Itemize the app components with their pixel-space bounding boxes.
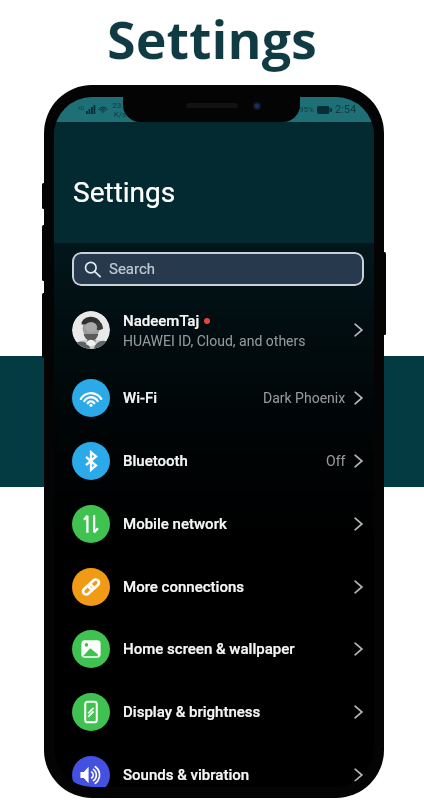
staticText: 4G <box>78 105 85 111</box>
button[interactable]: Display & brightness <box>54 681 374 742</box>
staticText: Wi-Fi <box>123 389 158 407</box>
staticText: 23.8 K/s <box>112 101 128 119</box>
staticText: Bluetooth <box>123 452 188 470</box>
button[interactable]: More connections <box>54 556 374 617</box>
staticText: Display & brightness <box>123 703 261 721</box>
staticText: 95% <box>299 105 314 114</box>
button[interactable]: Wi-Fi <box>54 367 374 428</box>
staticText: Mobile network <box>123 515 227 533</box>
staticText: HUAWEI ID, Cloud, and others <box>123 333 306 349</box>
staticText: Sounds & vibration <box>123 766 250 784</box>
staticText: Dark Phoenix <box>263 390 346 406</box>
staticText: Settings <box>0 3 424 74</box>
staticText: More connections <box>123 578 245 596</box>
button[interactable]: Home screen & wallpaper <box>54 618 374 679</box>
button[interactable]: Sounds & vibration <box>54 744 374 787</box>
button[interactable]: Search <box>72 252 364 286</box>
staticText: Search <box>109 260 156 278</box>
staticText: 2:54 <box>335 103 357 116</box>
staticText: NadeemTaj <box>123 312 200 330</box>
staticText: Settings <box>73 176 176 209</box>
staticText: Off <box>326 453 346 469</box>
staticText: Home screen & wallpaper <box>123 640 295 658</box>
button[interactable]: NadeemTaj <box>54 297 374 363</box>
button[interactable]: Mobile network <box>54 493 374 554</box>
button[interactable]: Bluetooth <box>54 430 374 491</box>
